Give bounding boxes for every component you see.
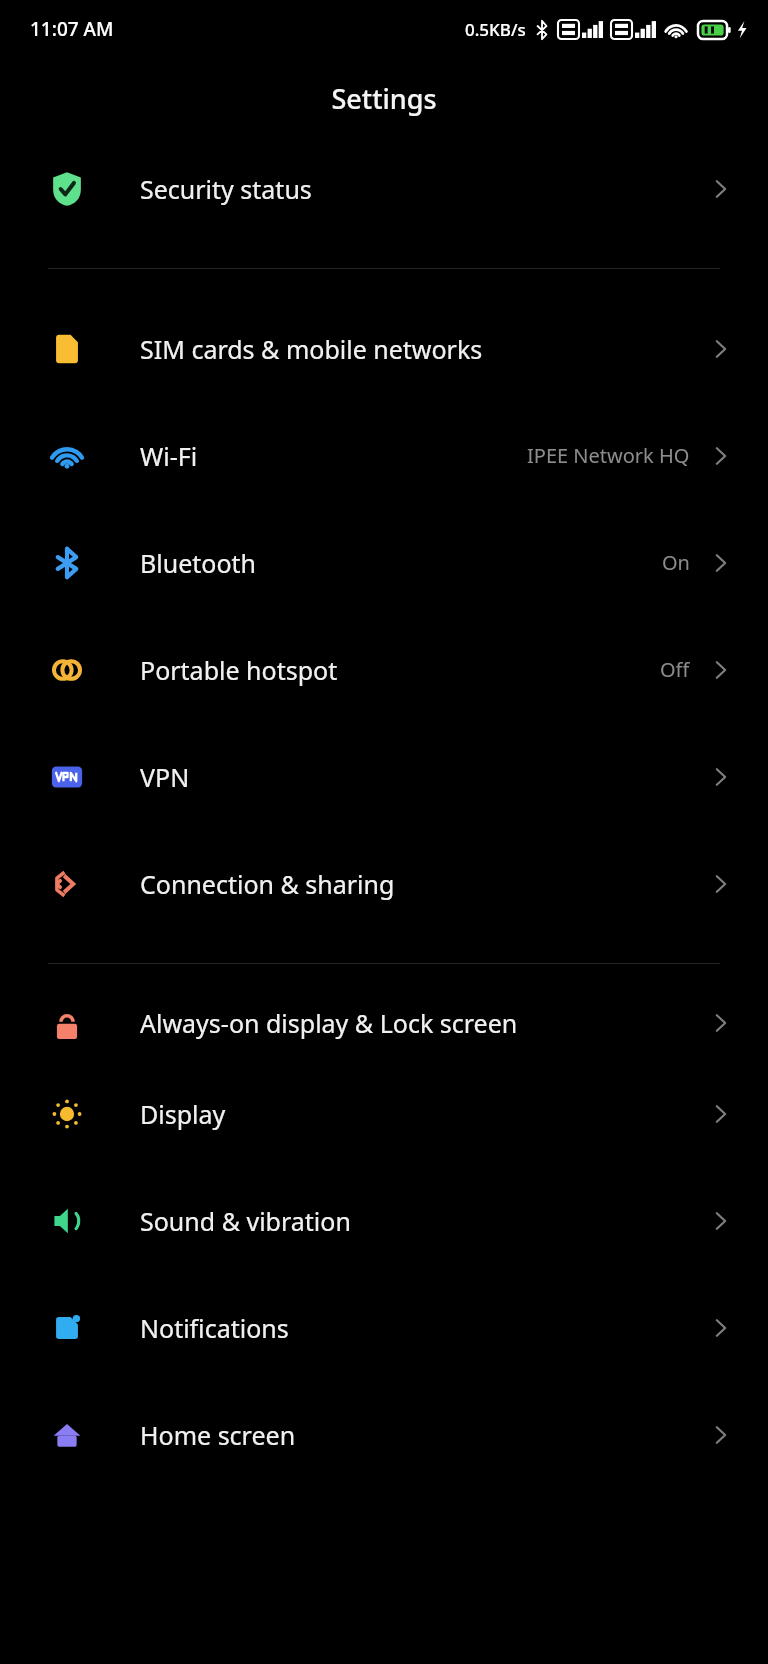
button[interactable]: SIM cards & mobile networks (0, 295, 768, 402)
staticText: 11:07 AM (30, 16, 114, 42)
button[interactable]: Display (0, 1060, 768, 1167)
staticText: Always-on display & Lock screen (140, 1006, 698, 1040)
staticText: On (662, 549, 690, 576)
button[interactable]: Wi-Fi (0, 402, 768, 509)
staticText: Bluetooth (140, 546, 652, 580)
staticText: Settings (0, 80, 768, 117)
staticText: VPN (140, 760, 698, 794)
staticText: Display (140, 1097, 698, 1131)
button[interactable]: Notifications (0, 1274, 768, 1381)
button[interactable]: Portable hotspot (0, 616, 768, 723)
staticText: Security status (140, 172, 698, 206)
staticText: Sound & vibration (140, 1204, 698, 1238)
staticText: Connection & sharing (140, 867, 698, 901)
staticText: Home screen (140, 1418, 698, 1452)
staticText: Off (660, 656, 690, 683)
button[interactable]: VPN (0, 723, 768, 830)
staticText: Notifications (140, 1311, 698, 1345)
staticText: 0.5KB/s (465, 18, 526, 41)
staticText: Portable hotspot (140, 653, 650, 687)
staticText: SIM cards & mobile networks (140, 332, 698, 366)
button[interactable]: Home screen (0, 1381, 768, 1488)
button[interactable]: Bluetooth (0, 509, 768, 616)
button[interactable]: Sound & vibration (0, 1167, 768, 1274)
staticText: IPEE Network HQ (527, 442, 690, 469)
button[interactable]: Connection & sharing (0, 830, 768, 937)
staticText: Wi-Fi (140, 439, 517, 473)
button[interactable]: Always-on display & Lock screen (0, 986, 768, 1060)
button[interactable]: Security status (0, 135, 768, 242)
